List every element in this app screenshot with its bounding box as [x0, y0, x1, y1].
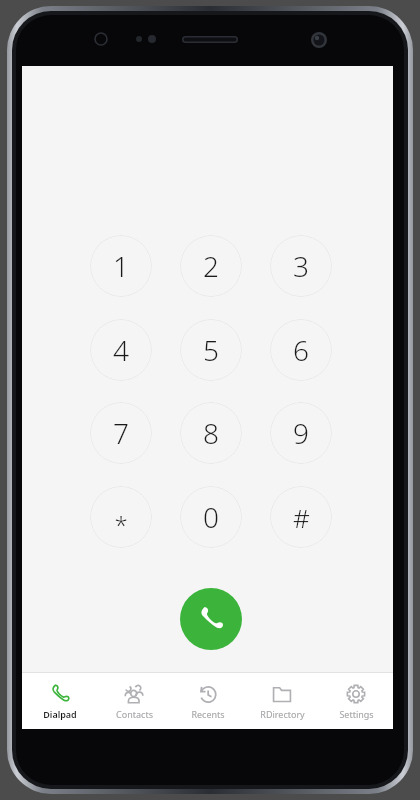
staticText: 7: [113, 414, 129, 452]
button[interactable]: 5: [180, 319, 242, 381]
staticText: 5: [203, 331, 219, 369]
staticText: 1: [113, 247, 129, 285]
staticText: 3: [293, 247, 309, 285]
button[interactable]: 1: [90, 235, 152, 297]
button[interactable]: *: [90, 486, 152, 548]
staticText: Contacts: [116, 708, 153, 720]
button[interactable]: 8: [180, 402, 242, 464]
staticText: 2: [203, 247, 219, 285]
staticText: Settings: [339, 708, 374, 720]
staticText: 9: [293, 414, 309, 452]
button[interactable]: Dialpad: [22, 673, 97, 729]
staticText: 6: [293, 331, 309, 369]
button[interactable]: 7: [90, 402, 152, 464]
button[interactable]: 9: [270, 402, 332, 464]
button[interactable]: 2: [180, 235, 242, 297]
button[interactable]: #: [270, 486, 332, 548]
staticText: Dialpad: [43, 708, 77, 720]
staticText: Recents: [191, 708, 225, 720]
staticText: 4: [113, 331, 129, 369]
button[interactable]: 0: [180, 486, 242, 548]
staticText: 0: [203, 498, 219, 536]
staticText: 8: [203, 414, 219, 452]
button[interactable]: Recents: [171, 673, 245, 729]
staticText: RDirectory: [260, 708, 305, 720]
button[interactable]: Contacts: [97, 673, 171, 729]
button[interactable]: Call: [180, 588, 242, 650]
button[interactable]: 3: [270, 235, 332, 297]
button[interactable]: 4: [90, 319, 152, 381]
staticText: *: [114, 508, 128, 541]
button[interactable]: Settings: [319, 673, 393, 729]
staticText: #: [293, 500, 310, 535]
button[interactable]: RDirectory: [245, 673, 319, 729]
button[interactable]: 6: [270, 319, 332, 381]
